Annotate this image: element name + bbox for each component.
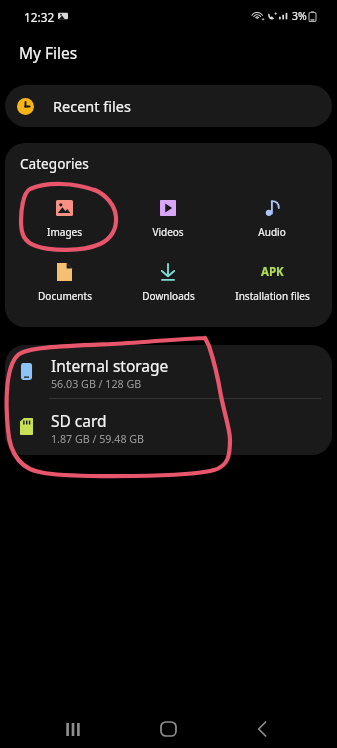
button[interactable]: APK <box>220 254 324 303</box>
staticText: Internal storage <box>51 355 169 376</box>
staticText: 3% <box>292 9 307 23</box>
staticText: SD card <box>51 410 107 431</box>
button[interactable]: Downloads <box>116 254 220 303</box>
staticText: My Files <box>19 42 78 63</box>
staticText: Images <box>47 225 82 239</box>
button[interactable]: Documents <box>13 254 116 303</box>
staticText: Categories <box>20 154 89 173</box>
staticText: Installation files <box>235 289 310 303</box>
staticText: Videos <box>152 225 184 239</box>
button[interactable]: Recent apps <box>49 705 97 748</box>
staticText: Recent files <box>53 96 131 116</box>
button[interactable]: Images <box>13 190 116 239</box>
staticText: Downloads <box>142 289 195 303</box>
staticText: APK <box>261 264 284 280</box>
button[interactable]: SD card <box>5 399 332 453</box>
button[interactable]: Videos <box>116 190 220 239</box>
button[interactable]: Back <box>238 705 286 748</box>
staticText: Documents <box>38 289 92 303</box>
button[interactable]: Audio <box>220 190 324 239</box>
button[interactable]: Home <box>144 705 192 748</box>
button[interactable]: Recent files <box>5 85 332 127</box>
staticText: Audio <box>258 225 286 239</box>
staticText: 56.03 GB / 128 GB <box>51 377 142 392</box>
staticText: 12:32 <box>24 9 55 25</box>
staticText: 1.87 GB / 59.48 GB <box>51 432 145 447</box>
button[interactable]: Internal storage <box>5 345 332 398</box>
